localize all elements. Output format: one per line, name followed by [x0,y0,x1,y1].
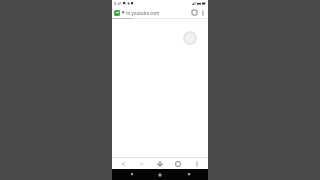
staticText: m.youtube.com [126,10,160,16]
button[interactable]: Recent apps [180,169,198,180]
button[interactable]: More options [199,9,206,16]
button[interactable]: Home [153,158,167,169]
button[interactable]: Menu [190,158,204,169]
button[interactable]: Back [123,169,141,180]
button[interactable]: Home [151,169,169,180]
button[interactable]: Switch tabs [191,9,198,16]
button[interactable]: m.youtube.com [122,7,189,18]
button[interactable]: Back [116,158,130,169]
staticText: 9:41 [114,1,122,6]
button[interactable]: Tabs [171,158,185,169]
button[interactable]: Forward [135,158,149,169]
button[interactable]: Site information [114,10,120,16]
